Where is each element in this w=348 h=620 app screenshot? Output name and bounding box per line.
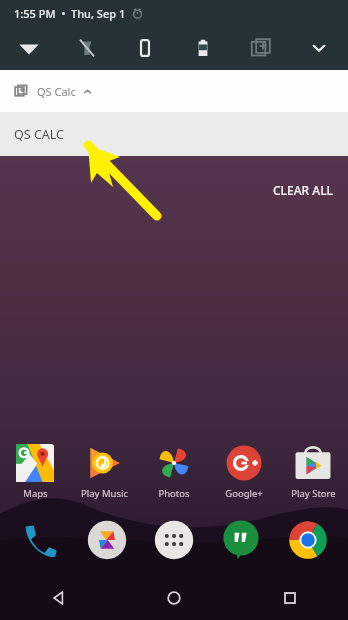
button[interactable]: Chrome [282, 514, 334, 566]
button[interactable]: QS Calc tile [232, 26, 290, 70]
staticText: CLEAR ALL [273, 182, 333, 198]
staticText: QS CALC [14, 126, 64, 143]
button[interactable]: All apps [148, 514, 200, 566]
button[interactable]: Gallery [81, 514, 133, 566]
button[interactable]: Recent apps [260, 576, 320, 620]
staticText: Play Music [81, 487, 128, 500]
button[interactable]: Hangouts [215, 514, 267, 566]
button[interactable]: Wi-Fi [0, 26, 58, 70]
button[interactable]: CLEAR ALL [258, 178, 348, 202]
button[interactable]: Back [28, 576, 88, 620]
button[interactable]: Play Music [71, 444, 137, 500]
staticText: Google+ [225, 487, 263, 500]
button[interactable]: QS Calc [0, 70, 348, 112]
button[interactable]: Battery 73 percent [174, 26, 232, 70]
button[interactable]: Home [144, 576, 204, 620]
button[interactable]: Photos [141, 444, 207, 500]
staticText: Play Store [291, 487, 336, 500]
staticText: Maps [23, 487, 48, 500]
button[interactable]: Phone [14, 514, 66, 566]
button[interactable]: Google+ [211, 444, 277, 500]
button[interactable]: Play Store [280, 444, 346, 500]
button[interactable]: Flashlight [58, 26, 116, 70]
staticText: 1:55 PM [14, 6, 56, 21]
button[interactable]: QS CALC [0, 112, 348, 156]
button[interactable]: Expand quick settings [290, 26, 348, 70]
button[interactable]: Maps [2, 444, 68, 500]
button[interactable]: Auto rotate [116, 26, 174, 70]
staticText: Thu, Sep 1 [71, 6, 126, 21]
staticText: Photos [158, 487, 190, 500]
staticText: QS Calc [37, 84, 76, 99]
